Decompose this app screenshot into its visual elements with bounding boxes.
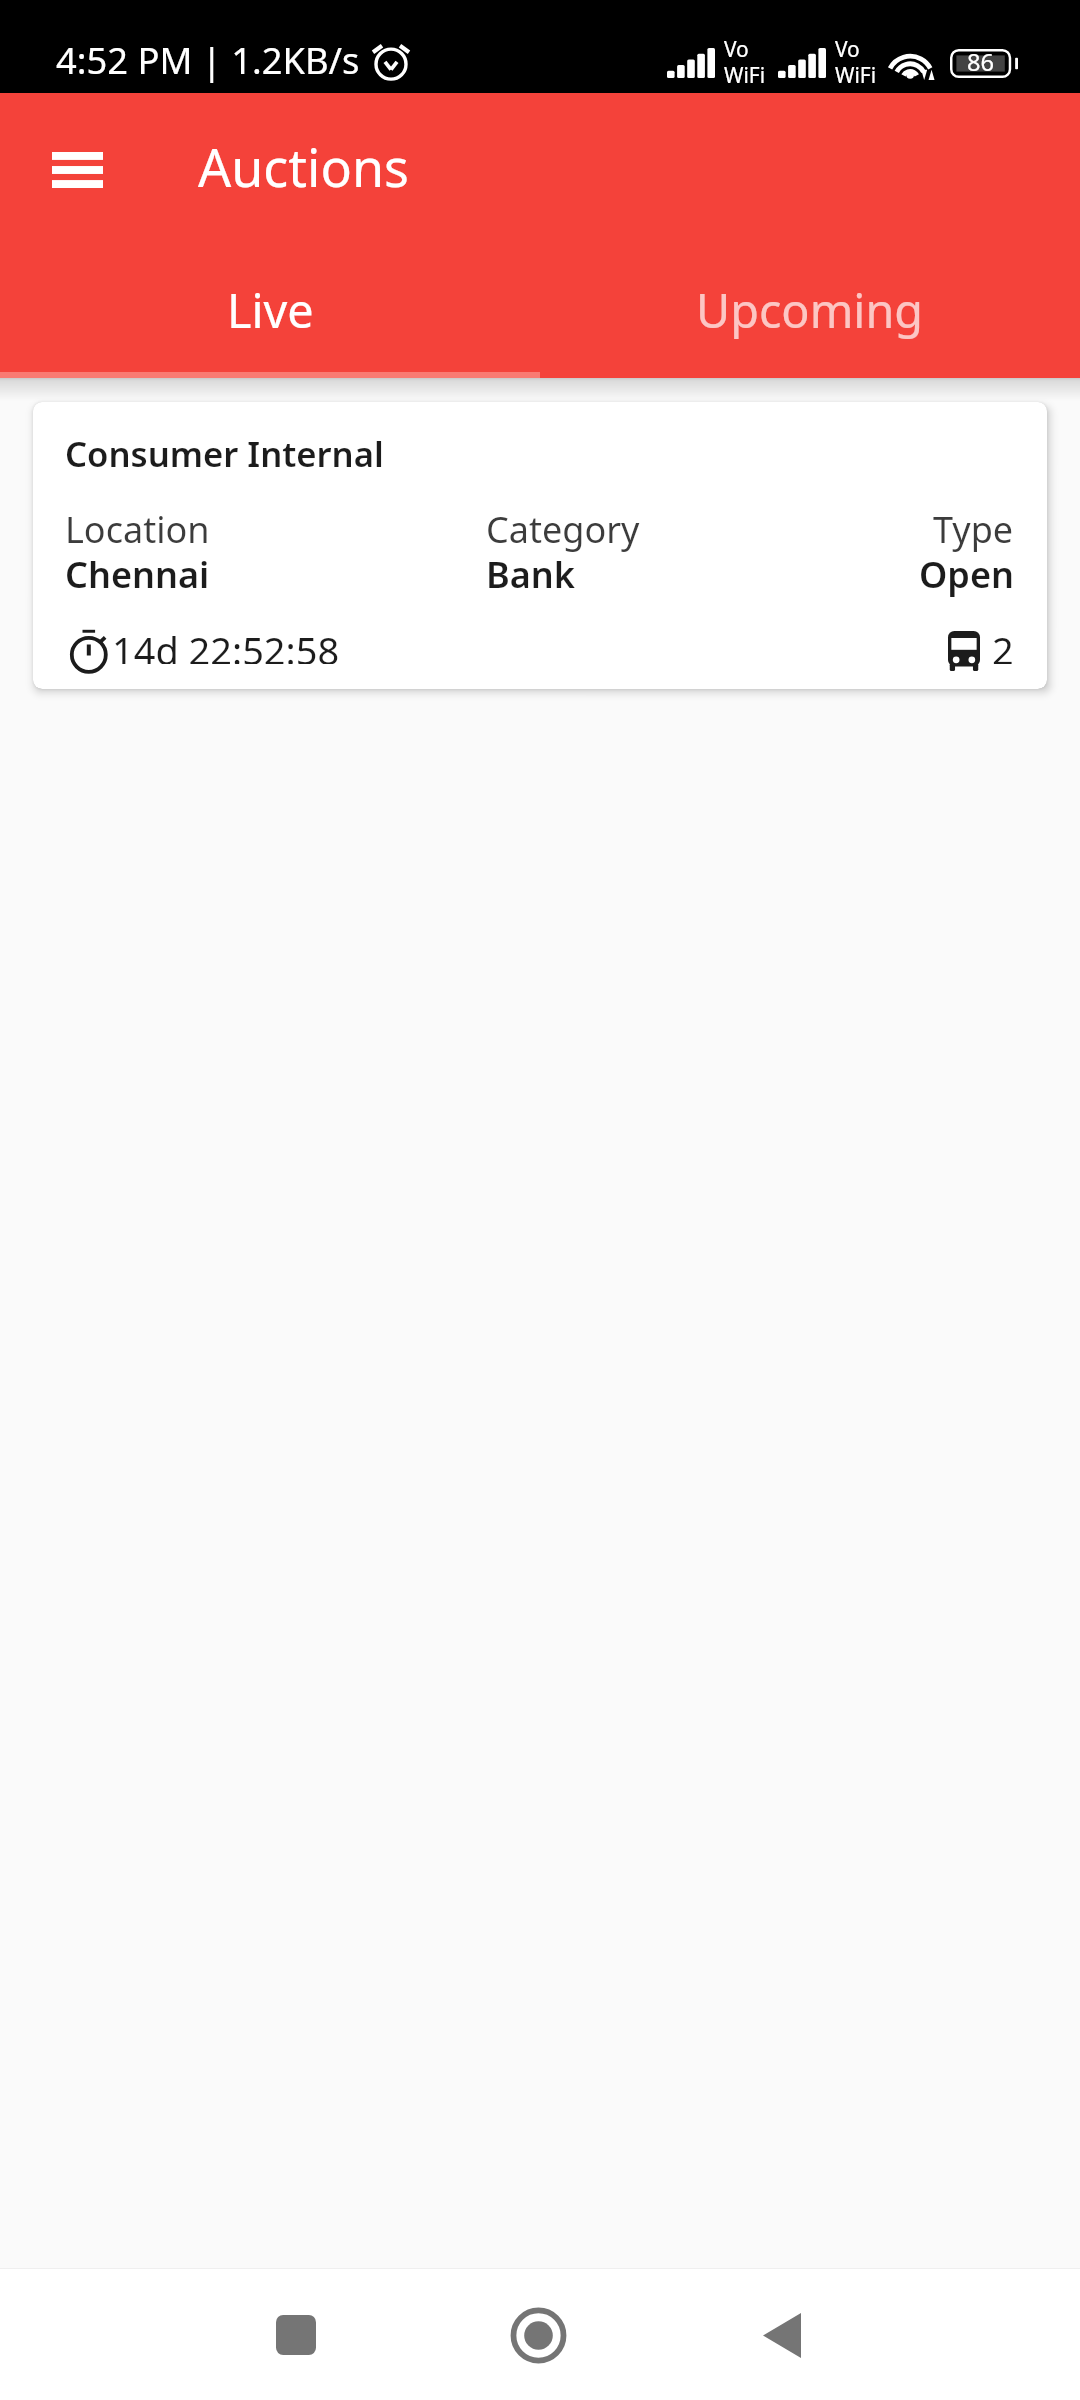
staticText: Bank — [486, 549, 575, 598]
staticText: WiFi — [835, 61, 877, 89]
staticText: Consumer Internal — [65, 430, 384, 477]
staticText: Location — [65, 504, 210, 553]
button[interactable]: Open navigation menu — [11, 104, 143, 236]
staticText: Vo — [835, 35, 860, 63]
staticText: Category — [486, 504, 640, 553]
button[interactable]: Home — [478, 2299, 599, 2371]
staticText: Type — [933, 504, 1014, 553]
button[interactable]: Recent apps — [235, 2299, 356, 2371]
staticText: Live — [227, 278, 314, 342]
staticText: 2 — [992, 624, 1014, 664]
staticText: 86 — [967, 46, 995, 78]
staticText: Auctions — [198, 131, 409, 202]
staticText: Upcoming — [696, 278, 924, 342]
staticText: Open — [919, 549, 1014, 598]
button[interactable]: Consumer Internal — [33, 402, 1047, 689]
staticText: Vo — [724, 35, 749, 63]
staticText: Chennai — [65, 549, 210, 598]
button[interactable]: Back — [721, 2299, 842, 2371]
staticText: 4:52 PM | 1.2KB/s — [56, 35, 360, 84]
button[interactable]: Upcoming — [540, 245, 1080, 372]
staticText: WiFi — [724, 61, 766, 89]
staticText: 14d 22:52:58 — [112, 624, 340, 664]
button[interactable]: Live — [0, 245, 540, 372]
